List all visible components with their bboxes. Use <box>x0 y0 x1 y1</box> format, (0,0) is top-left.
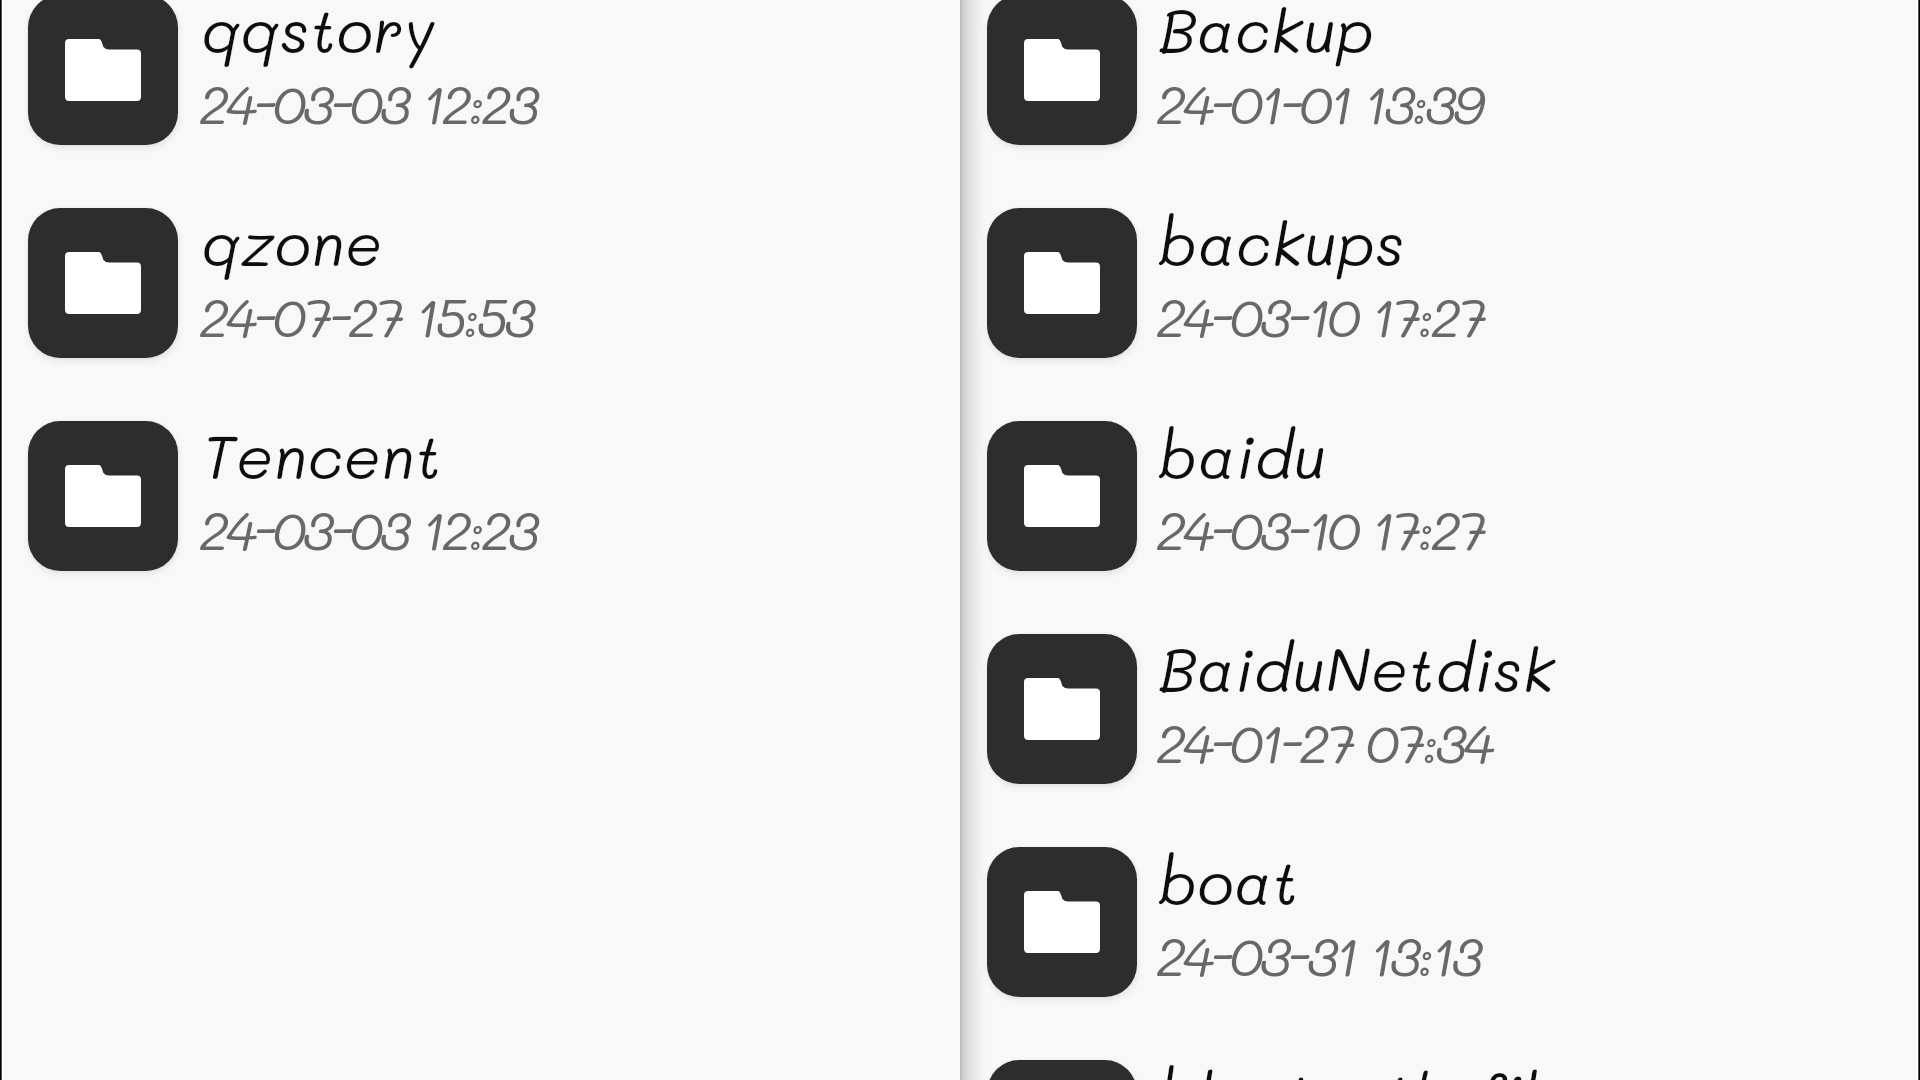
button[interactable]: Open folder Tencent <box>0 389 960 602</box>
button[interactable]: Open folder backups <box>960 176 1920 389</box>
staticText: 24-03-03 12:23 <box>199 494 536 564</box>
button[interactable]: Open folder Backup <box>960 0 1920 176</box>
button[interactable]: Open folder qqstory <box>0 0 960 176</box>
staticText: 24-03-03 12:23 <box>199 68 536 138</box>
staticText: 24-01-01 13:39 <box>1156 68 1482 138</box>
staticText: 24-07-27 15:53 <box>199 281 533 351</box>
staticText: 24-03-10 17:27 <box>1156 281 1484 351</box>
staticText: 24-01-27 07:34 <box>1156 707 1492 777</box>
button[interactable]: Open folder qzone <box>0 176 960 389</box>
staticText: backups <box>1159 203 1405 281</box>
staticText: boat <box>1159 842 1299 920</box>
staticText: 24-03-10 17:27 <box>1156 494 1484 564</box>
staticText: Tencent <box>202 416 443 494</box>
staticText: qzone <box>202 203 383 281</box>
button[interactable]: Open folder bluetooth_files <box>960 1028 1920 1080</box>
staticText: bluetooth_files <box>1159 1055 1606 1080</box>
button[interactable]: Open folder boat <box>960 815 1920 1028</box>
staticText: BaiduNetdisk <box>1159 629 1556 707</box>
staticText: Backup <box>1159 0 1375 68</box>
staticText: qqstory <box>202 0 436 68</box>
staticText: 24-03-31 13:13 <box>1156 920 1480 990</box>
button[interactable]: Open folder BaiduNetdisk <box>960 602 1920 815</box>
button[interactable]: Open folder baidu <box>960 389 1920 602</box>
staticText: baidu <box>1159 416 1327 494</box>
